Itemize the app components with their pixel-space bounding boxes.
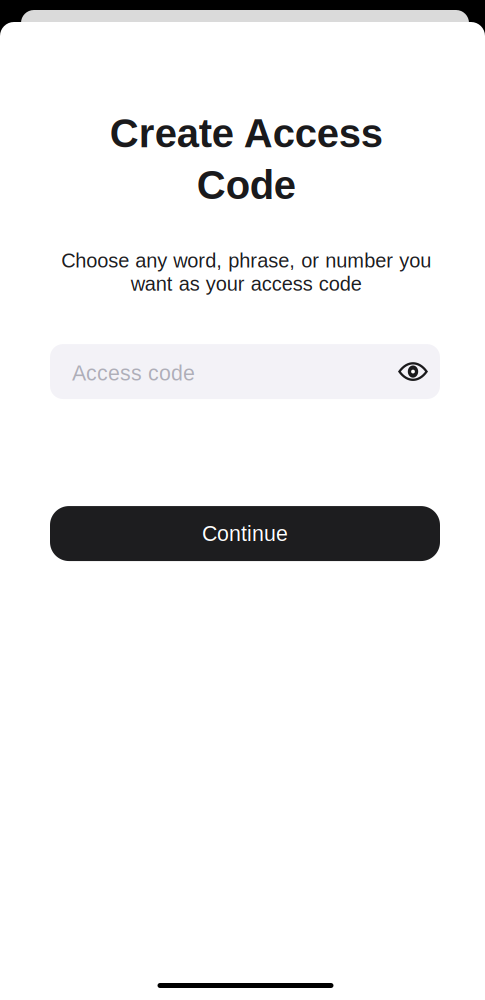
button[interactable]: Access code	[50, 344, 440, 399]
staticText: Continue	[202, 522, 288, 545]
button[interactable]: Show access code	[391, 350, 435, 394]
staticText: Access code	[72, 361, 195, 385]
button[interactable]: Continue	[50, 506, 440, 561]
staticText: Create Access Code	[109, 111, 382, 207]
staticText: Choose any word, phrase, or number you w…	[61, 249, 431, 295]
